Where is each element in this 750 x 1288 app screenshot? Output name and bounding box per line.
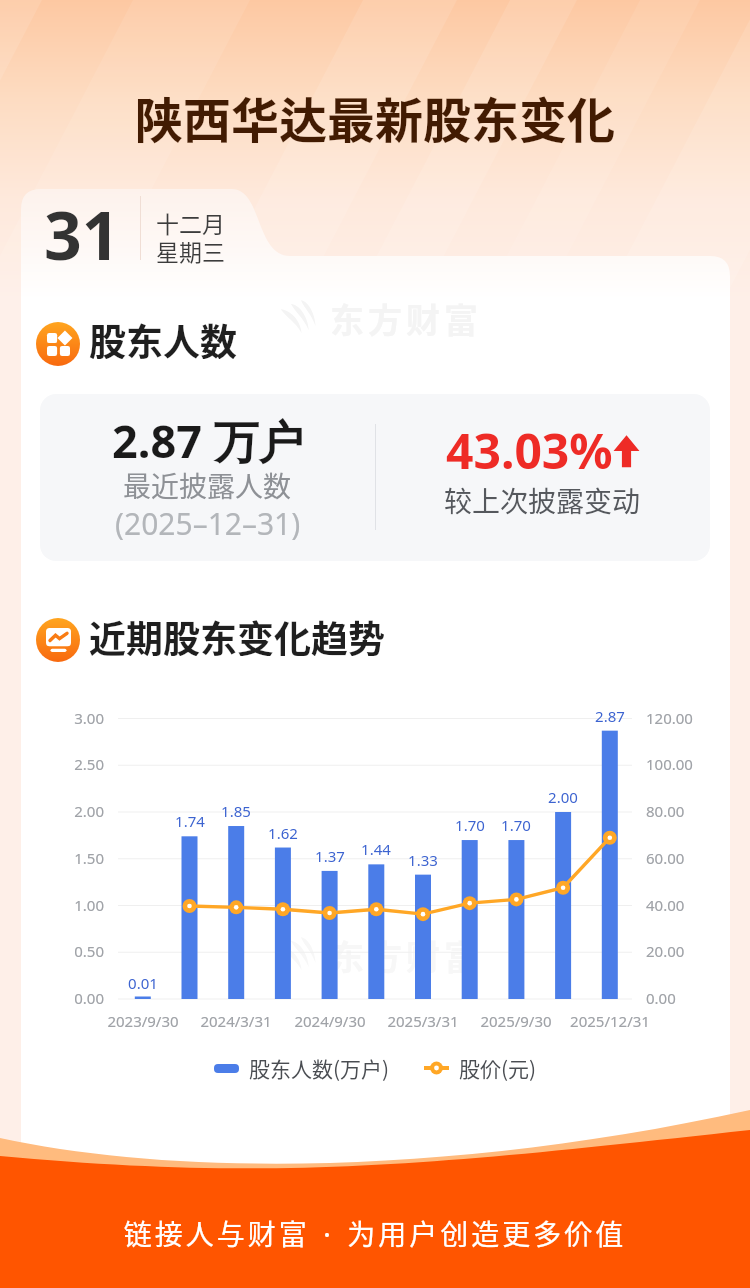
staticText: 2.87	[580, 706, 640, 726]
staticText: 陕西华达最新股东变化	[0, 82, 750, 152]
staticText: 2.00	[44, 801, 104, 821]
staticText: 120.00	[646, 708, 693, 728]
staticText: 链接人与财富 · 为用户创造更多价值	[0, 1213, 750, 1254]
staticText: 2.00	[533, 787, 593, 807]
staticText: 1.70	[486, 815, 546, 835]
other: 股东人数	[36, 322, 80, 366]
staticText: 股东人数	[89, 313, 237, 359]
staticText: 2.50	[44, 754, 104, 774]
staticText: 1.85	[206, 801, 266, 821]
staticText: 3.00	[44, 708, 104, 728]
staticText: 100.00	[646, 754, 693, 774]
staticText: 1.44	[346, 839, 406, 859]
staticText: 2.87 万户	[112, 410, 304, 471]
staticText: 0.01	[113, 973, 173, 993]
staticText: 1.33	[393, 850, 453, 870]
staticText: 2025/9/30	[466, 1011, 566, 1031]
staticText: 0.00	[44, 988, 104, 1008]
staticText: 2025/3/31	[373, 1011, 473, 1031]
button[interactable]: 31	[44, 191, 225, 265]
staticText: 股价(元)	[459, 1053, 537, 1083]
button[interactable]: 近期股东变化趋势	[36, 610, 385, 656]
staticText: 0.50	[44, 941, 104, 961]
staticText: 1.37	[300, 846, 360, 866]
staticText: 1.50	[44, 848, 104, 868]
staticText: 40.00	[646, 895, 685, 915]
staticText: 十二月	[156, 206, 225, 239]
staticText: 股东人数(万户)	[249, 1053, 390, 1083]
staticText: 60.00	[646, 848, 685, 868]
staticText: 近期股东变化趋势	[89, 610, 385, 656]
button[interactable]: 股东人数	[36, 313, 237, 359]
other: 近期股东变化趋势	[36, 618, 80, 662]
staticText: 1.70	[440, 815, 500, 835]
staticText: 2024/3/31	[186, 1011, 286, 1031]
staticText: 东方财富	[330, 294, 482, 343]
staticText: 1.74	[160, 811, 220, 831]
staticText: 较上次披露变动	[444, 480, 641, 521]
staticText: 31	[44, 189, 120, 263]
staticText: 43.03%	[446, 418, 613, 483]
staticText: 2025/12/31	[560, 1011, 660, 1031]
staticText: 0.00	[646, 988, 676, 1008]
staticText: 最近披露人数	[123, 465, 292, 506]
staticText: 20.00	[646, 941, 685, 961]
staticText: (2025–12–31)	[115, 503, 301, 544]
staticText: 2024/9/30	[280, 1011, 380, 1031]
staticText: 星期三	[156, 234, 225, 267]
staticText: 1.62	[253, 823, 313, 843]
staticText: 1.00	[44, 895, 104, 915]
staticText: 东方财富	[330, 931, 482, 980]
staticText: 2023/9/30	[93, 1011, 193, 1031]
staticText: 80.00	[646, 801, 685, 821]
